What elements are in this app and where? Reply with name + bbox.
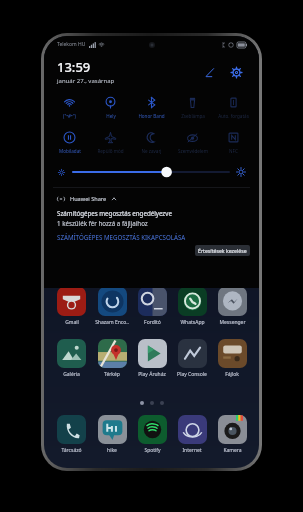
button[interactable]: Auto. forgatás bbox=[213, 95, 254, 120]
button[interactable]: Fényerő bbox=[73, 165, 229, 179]
staticText: Internet bbox=[182, 447, 202, 454]
button[interactable]: Shazam Enco.. bbox=[92, 285, 132, 328]
button[interactable]: Tárcsázó bbox=[51, 413, 92, 456]
staticText: Zseblámpa bbox=[181, 113, 205, 119]
button[interactable]: Play Console bbox=[172, 337, 212, 380]
staticText: január 27., vasárnap bbox=[57, 77, 115, 85]
staticText: Play Console bbox=[177, 371, 207, 378]
button[interactable]: Spotify bbox=[132, 413, 172, 456]
staticText: Számítógépes megosztás engedélyezve bbox=[57, 209, 172, 217]
staticText: Mobiladat bbox=[59, 148, 81, 154]
button[interactable]: hike bbox=[92, 413, 132, 456]
button[interactable]: Zseblámpa bbox=[172, 95, 213, 120]
staticText: Telekom HU bbox=[57, 41, 86, 48]
staticText: Galéria bbox=[63, 371, 80, 378]
staticText: Fordító bbox=[144, 319, 161, 326]
button[interactable]: Szerkesztés bbox=[200, 62, 220, 82]
staticText: Shazam Enco.. bbox=[95, 319, 129, 326]
staticText: hike bbox=[107, 447, 117, 454]
button[interactable]: Repülő mód bbox=[90, 130, 131, 155]
staticText: Gmail bbox=[65, 319, 79, 326]
staticText: Auto. forgatás bbox=[218, 113, 249, 119]
button[interactable]: Huawei Share bbox=[57, 195, 246, 203]
button[interactable]: Térkép bbox=[92, 337, 132, 380]
button[interactable]: Fájlok bbox=[212, 337, 252, 380]
button[interactable]: Mobiladat bbox=[49, 130, 90, 155]
staticText: Térkép bbox=[104, 371, 120, 378]
staticText: Értesítések kezelése bbox=[198, 247, 247, 254]
button[interactable]: NFC bbox=[213, 130, 254, 155]
button[interactable]: ("•#•") bbox=[49, 95, 90, 120]
button[interactable]: Hely bbox=[90, 95, 131, 120]
button[interactable]: Ne zavarj bbox=[131, 130, 172, 155]
staticText: Repülő mód bbox=[97, 148, 124, 154]
staticText: NFC bbox=[229, 148, 238, 154]
button[interactable]: Play Áruház bbox=[132, 337, 172, 380]
button[interactable]: Honor Band bbox=[131, 95, 172, 120]
staticText: Honor Band bbox=[138, 113, 165, 119]
staticText: Spotify bbox=[144, 447, 161, 454]
button[interactable]: Szemvédelem bbox=[172, 130, 213, 155]
staticText: Play Áruház bbox=[138, 371, 166, 378]
staticText: Hely bbox=[106, 113, 116, 119]
staticText: Messenger bbox=[219, 319, 246, 326]
staticText: Ne zavarj bbox=[141, 148, 162, 154]
button[interactable]: Értesítések kezelése bbox=[195, 245, 250, 256]
button[interactable]: Gmail bbox=[51, 285, 92, 328]
staticText: SZÁMÍTÓGÉPES MEGOSZTÁS KIKAPCSOLÁSA bbox=[57, 233, 186, 241]
button[interactable]: Fordító bbox=[132, 285, 172, 328]
button[interactable]: Kamera bbox=[212, 413, 252, 456]
staticText: Szemvédelem bbox=[178, 148, 208, 154]
staticText: Huawei Share bbox=[70, 195, 107, 203]
staticText: Kamera bbox=[223, 447, 242, 454]
staticText: 13:59 bbox=[57, 58, 91, 76]
button[interactable]: Internet bbox=[172, 413, 212, 456]
button[interactable]: Messenger bbox=[212, 285, 252, 328]
staticText: 1 készülék fér hozzá a fájljaihoz bbox=[57, 219, 148, 227]
button[interactable]: SZÁMÍTÓGÉPES MEGOSZTÁS KIKAPCSOLÁSA bbox=[57, 233, 186, 241]
button[interactable]: Beállítások bbox=[226, 62, 246, 82]
staticText: Tárcsázó bbox=[61, 447, 82, 454]
button[interactable]: Galéria bbox=[51, 337, 92, 380]
button[interactable]: WhatsApp bbox=[172, 285, 212, 328]
staticText: ("•#•") bbox=[63, 113, 76, 119]
staticText: WhatsApp bbox=[180, 319, 205, 326]
staticText: Fájlok bbox=[225, 371, 239, 378]
